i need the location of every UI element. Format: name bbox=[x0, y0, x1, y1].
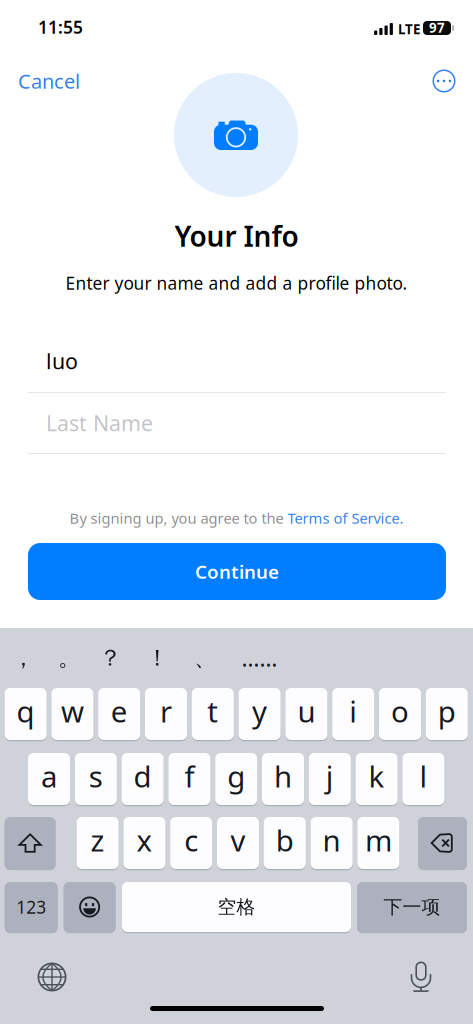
button[interactable]: x bbox=[123, 816, 165, 870]
staticText: n bbox=[323, 820, 341, 859]
staticText: m bbox=[365, 820, 392, 859]
button[interactable]: Dictation bbox=[399, 955, 443, 999]
staticText: y bbox=[252, 691, 267, 730]
button[interactable]: n bbox=[311, 816, 353, 870]
staticText: k bbox=[369, 756, 385, 795]
button[interactable]: Add profile photo bbox=[174, 73, 298, 197]
button[interactable]: u bbox=[285, 687, 327, 741]
staticText: ！ bbox=[146, 644, 169, 672]
staticText: …… bbox=[241, 643, 277, 673]
staticText: w bbox=[61, 691, 84, 730]
button[interactable]: Delete bbox=[418, 816, 467, 870]
staticText: b bbox=[276, 820, 294, 859]
button[interactable]: 下一项 bbox=[357, 881, 467, 933]
button[interactable]: v bbox=[217, 816, 259, 870]
button[interactable]: k bbox=[356, 752, 398, 806]
staticText: 11:55 bbox=[38, 15, 83, 38]
button[interactable]: ， bbox=[0, 630, 47, 686]
staticText: p bbox=[438, 691, 456, 730]
button[interactable]: y bbox=[239, 687, 281, 741]
button[interactable]: l bbox=[402, 752, 444, 806]
staticText: 空格 bbox=[217, 895, 255, 918]
staticText: l bbox=[419, 756, 427, 795]
button[interactable]: p bbox=[426, 687, 468, 741]
staticText: h bbox=[274, 756, 292, 795]
staticText: Enter your name and add a profile photo. bbox=[65, 271, 407, 294]
staticText: 。 bbox=[58, 644, 81, 672]
button[interactable]: d bbox=[122, 752, 164, 806]
button[interactable]: m bbox=[357, 816, 399, 870]
staticText: d bbox=[134, 756, 152, 795]
staticText: q bbox=[17, 691, 35, 730]
button[interactable]: Shift bbox=[5, 816, 56, 870]
staticText: ， bbox=[12, 644, 35, 672]
staticText: c bbox=[184, 820, 198, 859]
staticText: e bbox=[111, 691, 128, 730]
button[interactable]: Terms of Service. bbox=[287, 508, 403, 528]
button[interactable]: b bbox=[264, 816, 306, 870]
staticText: u bbox=[297, 691, 315, 730]
staticText: v bbox=[230, 820, 245, 859]
staticText: 97 bbox=[429, 19, 445, 36]
button[interactable]: Continue bbox=[28, 543, 446, 600]
button[interactable]: q bbox=[5, 687, 47, 741]
staticText: z bbox=[91, 820, 105, 859]
button[interactable]: i bbox=[332, 687, 374, 741]
button[interactable]: a bbox=[28, 752, 70, 806]
button[interactable]: t bbox=[192, 687, 234, 741]
button[interactable]: 123 bbox=[5, 881, 58, 933]
button[interactable]: s bbox=[75, 752, 117, 806]
staticText: j bbox=[326, 756, 334, 795]
button[interactable]: More bbox=[421, 58, 467, 104]
button[interactable]: Cancel bbox=[0, 60, 98, 102]
button[interactable]: c bbox=[170, 816, 212, 870]
staticText: Last Name bbox=[46, 409, 153, 437]
staticText: a bbox=[41, 756, 57, 795]
staticText: Continue bbox=[195, 559, 279, 584]
button[interactable]: 、 bbox=[182, 630, 229, 686]
staticText: Terms of Service. bbox=[287, 508, 403, 528]
staticText: By signing up, you agree to the bbox=[69, 508, 287, 528]
button[interactable]: o bbox=[379, 687, 421, 741]
button[interactable]: h bbox=[262, 752, 304, 806]
staticText: r bbox=[160, 691, 172, 730]
button[interactable]: ！ bbox=[134, 630, 181, 686]
staticText: 123 bbox=[16, 895, 46, 918]
button[interactable]: Emoji bbox=[64, 881, 116, 933]
staticText: x bbox=[136, 820, 152, 859]
staticText: ？ bbox=[99, 644, 122, 672]
staticText: 下一项 bbox=[383, 895, 440, 918]
staticText: t bbox=[207, 691, 218, 730]
staticText: 、 bbox=[194, 644, 217, 672]
staticText: s bbox=[89, 756, 103, 795]
button[interactable]: r bbox=[145, 687, 187, 741]
button[interactable]: z bbox=[77, 816, 119, 870]
staticText: o bbox=[391, 691, 409, 730]
button[interactable]: …… bbox=[236, 630, 283, 686]
staticText: LTE bbox=[398, 20, 420, 38]
button[interactable]: 。 bbox=[46, 630, 93, 686]
button[interactable]: e bbox=[98, 687, 140, 741]
staticText: luo bbox=[46, 347, 78, 375]
button[interactable]: ？ bbox=[87, 630, 134, 686]
button[interactable]: j bbox=[309, 752, 351, 806]
button[interactable]: w bbox=[51, 687, 93, 741]
staticText: Your Info bbox=[174, 217, 298, 255]
staticText: i bbox=[349, 691, 357, 730]
button[interactable]: 空格 bbox=[122, 881, 351, 933]
button[interactable]: f bbox=[168, 752, 210, 806]
button[interactable]: g bbox=[215, 752, 257, 806]
staticText: g bbox=[227, 756, 245, 795]
button[interactable]: Next keyboard bbox=[30, 955, 74, 999]
staticText: Cancel bbox=[18, 68, 80, 94]
staticText: f bbox=[184, 756, 194, 795]
